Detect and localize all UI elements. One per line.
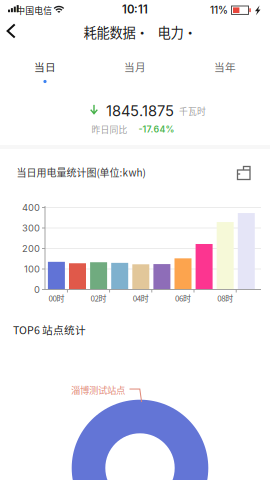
staticText: 耗能数据· 电力· — [83, 22, 196, 42]
button[interactable]: Expand chart — [236, 165, 256, 183]
staticText: 11% — [210, 4, 228, 16]
button[interactable]: 当日 — [0, 52, 90, 82]
staticText: 1845.1875 — [106, 102, 174, 120]
staticText: 当日 — [34, 59, 56, 74]
staticText: 10:11 — [122, 3, 148, 16]
staticText: 00时 — [48, 292, 64, 304]
staticText: 200 — [22, 243, 40, 254]
staticText: 100 — [24, 263, 40, 275]
staticText: 千瓦时 — [179, 104, 206, 117]
staticText: 02时 — [91, 292, 107, 304]
button[interactable]: Back — [0, 20, 44, 52]
staticText: 400 — [22, 202, 40, 213]
staticText: 昨日同比 — [91, 123, 127, 136]
staticText: 当年 — [214, 59, 236, 74]
staticText: -17.64% — [138, 124, 174, 135]
staticText: TOP6 站点统计 — [13, 322, 86, 337]
staticText: 04时 — [133, 292, 149, 304]
button[interactable]: 当月 — [90, 52, 180, 82]
staticText: 06时 — [175, 292, 191, 304]
staticText: 当日用电量统计图(单位:kwh) — [16, 165, 145, 179]
button[interactable]: 当年 — [180, 52, 270, 82]
staticText: 淄博测试站点 — [71, 383, 125, 396]
staticText: 300 — [22, 222, 40, 234]
staticText: 当月 — [124, 59, 146, 74]
staticText: 0 — [34, 284, 40, 295]
staticText: 08时 — [217, 292, 233, 304]
staticText: 中国电信 — [16, 4, 52, 16]
